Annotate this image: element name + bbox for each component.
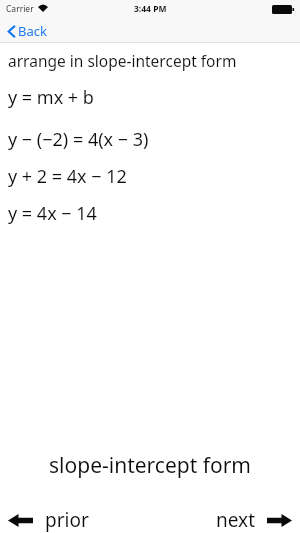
staticText: y − (−2) = 4(x − 3) (8, 127, 149, 152)
staticText: Back (18, 22, 47, 40)
staticText: Carrier (6, 3, 34, 15)
button[interactable]: next (208, 503, 300, 533)
staticText: 3:44 PM (134, 3, 167, 15)
button[interactable]: Back (5, 20, 49, 42)
staticText: y + 2 = 4x − 12 (8, 164, 127, 189)
staticText: next (216, 507, 255, 533)
other: Next (267, 514, 292, 527)
staticText: y = 4x − 14 (8, 201, 97, 226)
other: Previous (8, 514, 33, 527)
staticText: slope-intercept form (0, 451, 300, 480)
staticText: arrange in slope-intercept form (8, 50, 237, 71)
staticText: prior (45, 507, 89, 533)
staticText: y = mx + b (8, 85, 94, 110)
button[interactable]: Previous (0, 503, 97, 533)
